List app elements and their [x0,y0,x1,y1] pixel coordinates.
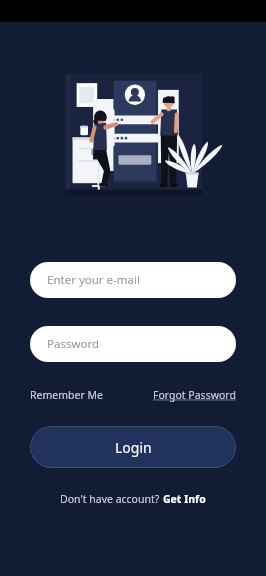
button[interactable]: Login [30,426,236,468]
staticText: Don't have account? [60,492,163,506]
staticText: Remember Me [30,388,103,402]
staticText: Enter your e-mail [47,272,140,288]
button[interactable]: Password [30,326,236,362]
button[interactable]: Enter your e-mail [30,262,236,298]
staticText: Get Info [163,492,206,506]
staticText: Login [115,438,152,457]
staticText: Password [47,336,100,352]
button[interactable]: Get Info [163,492,206,506]
staticText: Forgot Password [153,388,236,402]
button[interactable]: Forgot Password [153,384,236,406]
button[interactable]: Remember Me [30,384,103,406]
